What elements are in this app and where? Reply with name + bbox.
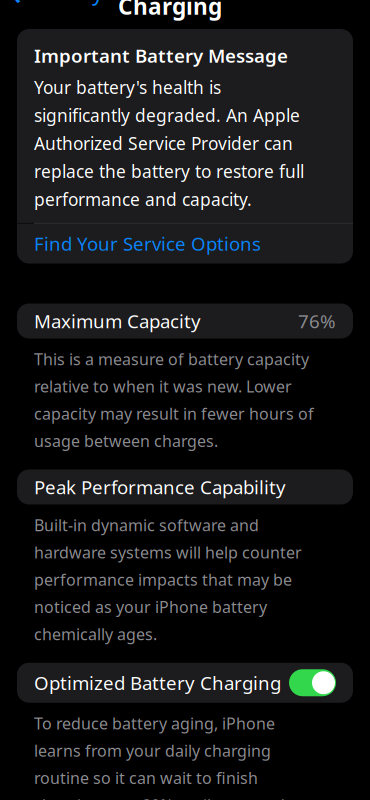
staticText: Your battery's health is significantly d… bbox=[34, 76, 304, 211]
staticText: ‹ bbox=[10, 0, 22, 15]
staticText: Maximum Capacity bbox=[34, 309, 201, 333]
staticText: Battery Health & Charging bbox=[118, 0, 310, 21]
button[interactable]: Peak Performance Capability bbox=[17, 469, 353, 504]
staticText: This is a measure of battery capacity re… bbox=[34, 348, 314, 451]
button[interactable]: Maximum Capacity bbox=[17, 303, 353, 338]
staticText: 76% bbox=[298, 309, 336, 333]
staticText: To reduce battery aging, iPhone learns f… bbox=[34, 713, 305, 800]
staticText: Optimized Battery Charging bbox=[34, 670, 281, 695]
button[interactable]: Find Your Service Options bbox=[17, 223, 353, 263]
staticText: Find Your Service Options bbox=[34, 231, 261, 256]
button[interactable]: Optimized Battery Charging bbox=[17, 663, 353, 703]
staticText: Important Battery Message bbox=[34, 43, 288, 68]
button[interactable]: ‹ bbox=[0, 0, 110, 11]
staticText: Peak Performance Capability bbox=[34, 475, 286, 499]
staticText: Battery bbox=[26, 0, 104, 6]
staticText: Built-in dynamic software and hardware s… bbox=[34, 514, 302, 645]
